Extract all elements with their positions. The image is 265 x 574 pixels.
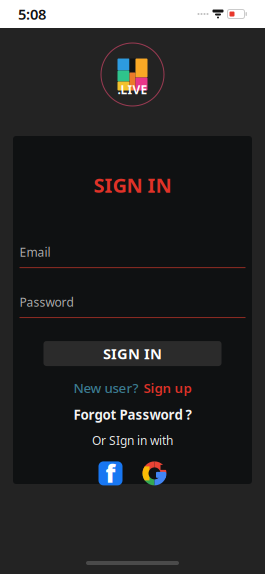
staticText: Sign up: [143, 379, 191, 397]
button[interactable]: Sign in with Facebook: [98, 461, 122, 485]
staticText: Password: [19, 294, 73, 310]
staticText: Forgot Password ?: [73, 406, 191, 423]
button[interactable]: New user?: [65, 376, 199, 400]
staticText: New user?: [73, 379, 138, 397]
staticText: Email: [19, 244, 50, 260]
button[interactable]: SIGN IN: [43, 341, 221, 366]
button[interactable]: Forgot Password ?: [65, 403, 199, 426]
button[interactable]: Sign in with Google: [142, 461, 166, 485]
staticText: .LIVE: [117, 82, 147, 97]
staticText: SIGN IN: [93, 172, 171, 198]
staticText: SIGN IN: [103, 344, 162, 363]
staticText: Or SIgn in with: [92, 432, 173, 448]
staticText: 5:08: [18, 4, 46, 24]
staticText: f: [105, 457, 115, 489]
